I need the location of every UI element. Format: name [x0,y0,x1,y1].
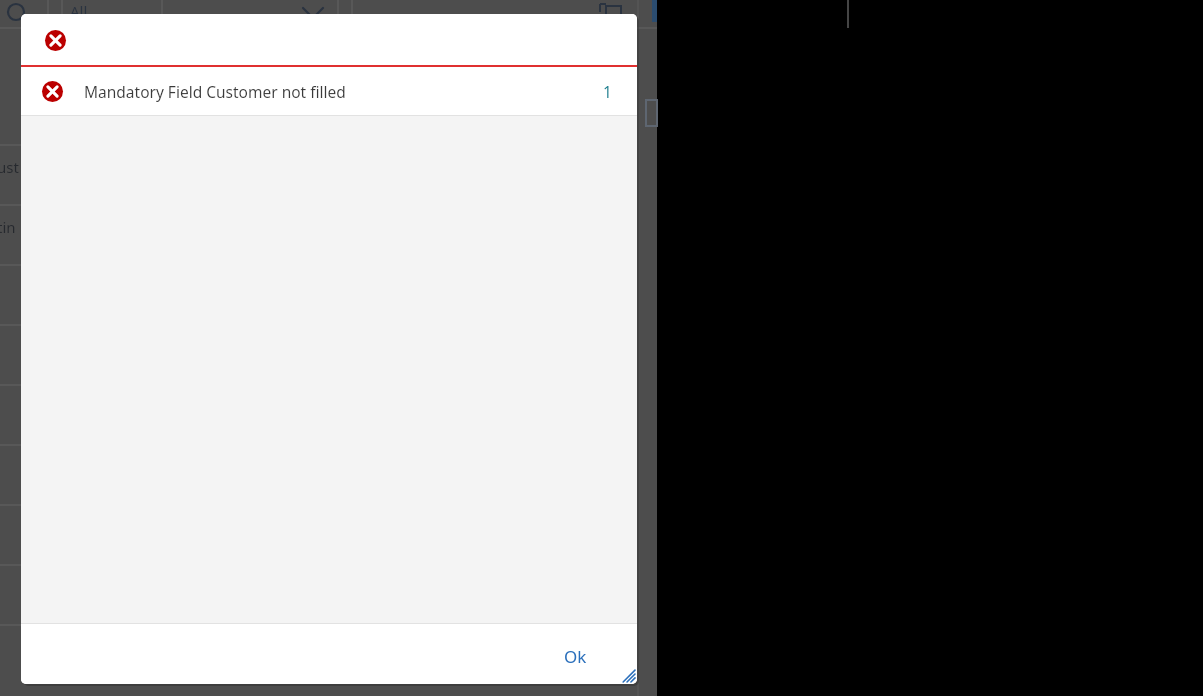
staticText: tin [0,217,16,237]
staticText: 1 [603,81,612,102]
staticText: All [70,1,88,21]
other: Error [45,30,66,51]
staticText: Mandatory Field Customer not filled [84,81,346,102]
button[interactable]: Mandatory Field Customer not filled [21,67,637,115]
other: Resize [621,668,635,682]
staticText: Ok [564,645,587,668]
button[interactable]: Ok [552,639,599,674]
staticText: ust [0,157,19,177]
